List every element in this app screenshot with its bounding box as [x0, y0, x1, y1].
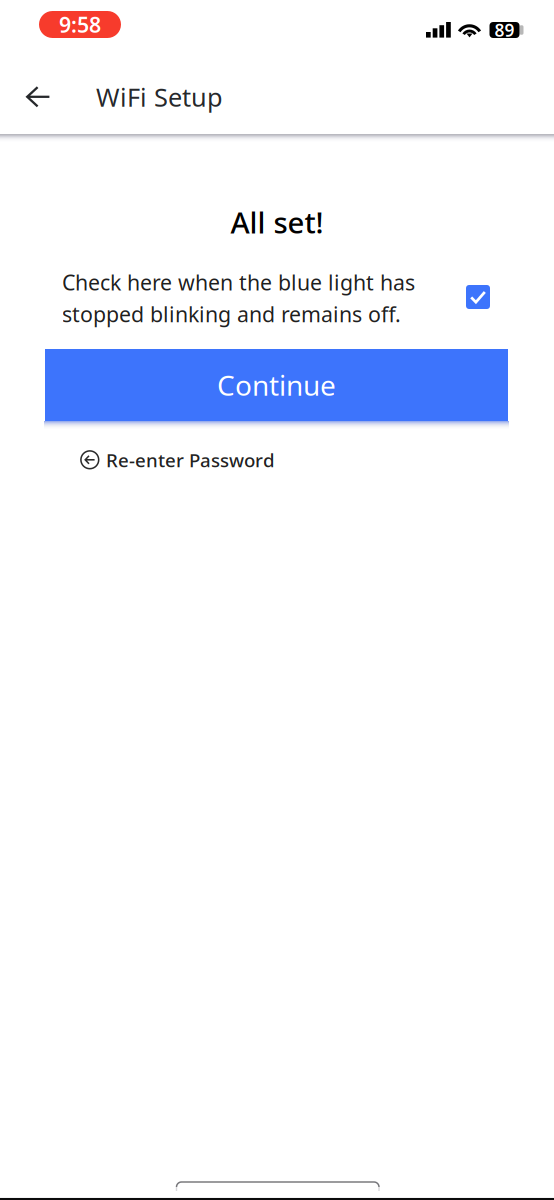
staticText: Check here when the blue light has stopp… — [62, 268, 415, 328]
staticText: Re-enter Password — [106, 448, 275, 472]
staticText: All set! — [230, 202, 323, 241]
button[interactable]: Back — [14, 73, 62, 121]
staticText: WiFi Setup — [96, 80, 223, 114]
staticText: 9:58 — [59, 10, 101, 39]
staticText: 89 — [494, 18, 514, 41]
button[interactable]: Continue — [45, 349, 508, 421]
staticText: Continue — [217, 366, 336, 404]
button[interactable]: Confirm the blue light stopped blinking — [466, 285, 490, 309]
button[interactable]: Re-enter Password — [80, 447, 340, 473]
